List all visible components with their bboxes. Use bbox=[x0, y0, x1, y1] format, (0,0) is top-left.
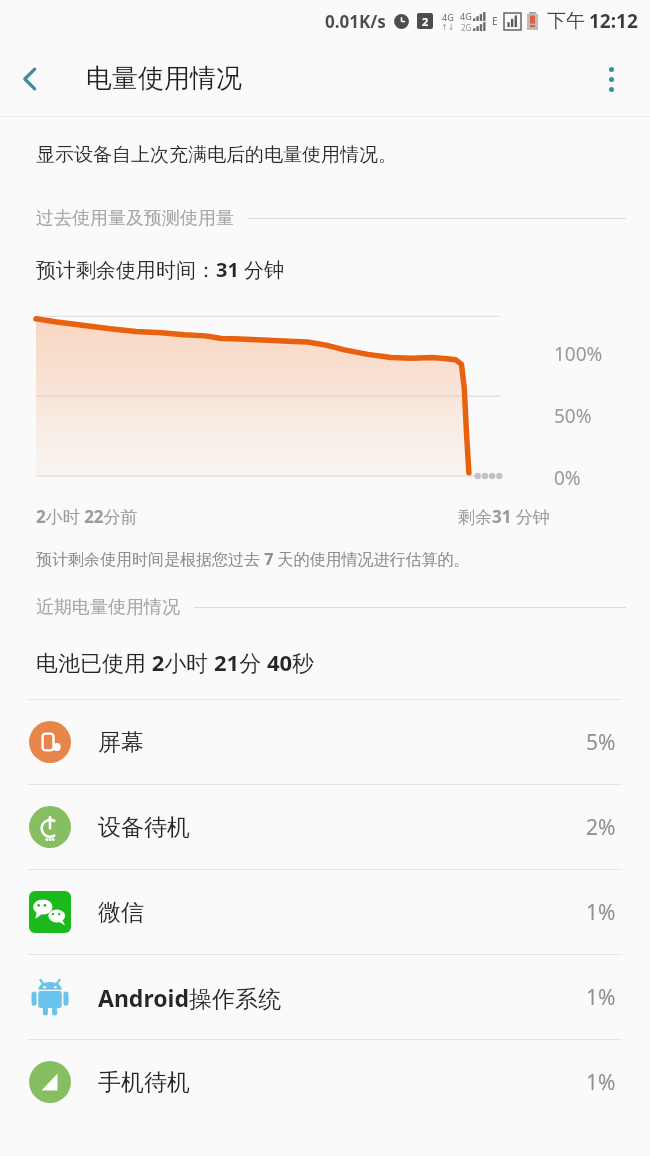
staticText: 4G bbox=[460, 10, 472, 22]
staticText: 0.01K/s bbox=[325, 10, 386, 33]
staticText: 屏幕 bbox=[98, 728, 144, 757]
staticText: 预计剩余使用时间是根据您过去 7 天的使用情况进行估算的。 bbox=[36, 548, 470, 570]
staticText: 电池已使用 2小时 21分 40秒 bbox=[36, 647, 315, 677]
staticText: Android操作系统 bbox=[98, 982, 282, 1013]
staticText: ↑↓ bbox=[441, 23, 455, 32]
button[interactable]: 屏幕 bbox=[0, 700, 650, 784]
staticText: E bbox=[492, 14, 498, 28]
staticText: 1% bbox=[586, 983, 616, 1012]
staticText: 下午 bbox=[547, 9, 585, 33]
staticText: 100% bbox=[554, 341, 603, 367]
staticText: 4G bbox=[442, 11, 454, 23]
staticText: 0% bbox=[554, 465, 581, 491]
staticText: 1% bbox=[586, 1068, 616, 1097]
staticText: 2 bbox=[422, 14, 429, 29]
staticText: 剩余31 分钟 bbox=[458, 505, 550, 528]
staticText: 微信 bbox=[98, 898, 144, 927]
staticText: 显示设备自上次充满电后的电量使用情况。 bbox=[36, 143, 397, 167]
staticText: 50% bbox=[554, 403, 592, 429]
staticText: 2G bbox=[461, 22, 472, 33]
button[interactable]: 设备待机 bbox=[0, 785, 650, 869]
button[interactable]: More options bbox=[582, 50, 640, 108]
staticText: 过去使用量及预测使用量 bbox=[36, 207, 234, 230]
staticText: 电量使用情况 bbox=[86, 62, 242, 95]
staticText: 12:12 bbox=[589, 8, 638, 34]
staticText: 预计剩余使用时间：31 分钟 bbox=[36, 256, 285, 283]
staticText: 2小时 22分前 bbox=[36, 505, 138, 528]
button[interactable]: 手机待机 bbox=[0, 1040, 650, 1124]
staticText: 近期电量使用情况 bbox=[36, 596, 180, 619]
staticText: 2% bbox=[586, 813, 616, 842]
staticText: 设备待机 bbox=[98, 813, 190, 842]
staticText: 1% bbox=[586, 898, 616, 927]
staticText: 手机待机 bbox=[98, 1068, 190, 1097]
button[interactable]: Back bbox=[0, 49, 60, 109]
staticText: 5% bbox=[586, 728, 616, 757]
button[interactable]: 微信 bbox=[0, 870, 650, 954]
button[interactable]: Android操作系统 bbox=[0, 955, 650, 1039]
